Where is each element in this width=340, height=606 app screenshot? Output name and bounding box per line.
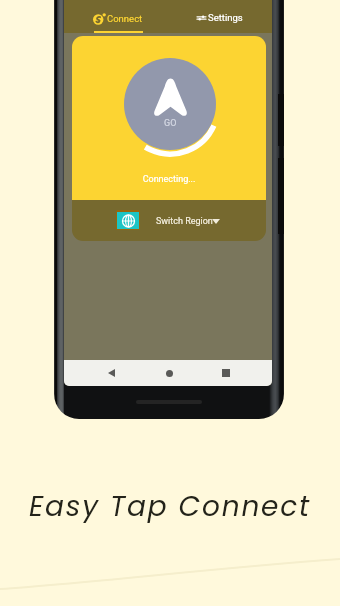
staticText: Switch Region (156, 216, 213, 227)
staticText: Settings (208, 12, 243, 23)
button[interactable]: GO, tap to connect (124, 58, 216, 150)
button[interactable]: Switch Region (116, 210, 219, 232)
staticText: GO (164, 118, 177, 129)
button[interactable]: Home (152, 360, 186, 386)
staticText: Easy Tap Connect (0, 487, 340, 526)
button[interactable]: Recent apps (209, 360, 243, 386)
button[interactable]: Settings (193, 10, 243, 30)
staticText: Connect (107, 13, 143, 24)
staticText: Connecting... (72, 174, 266, 185)
button[interactable]: Connect (88, 6, 144, 34)
button[interactable]: Back (94, 360, 128, 386)
